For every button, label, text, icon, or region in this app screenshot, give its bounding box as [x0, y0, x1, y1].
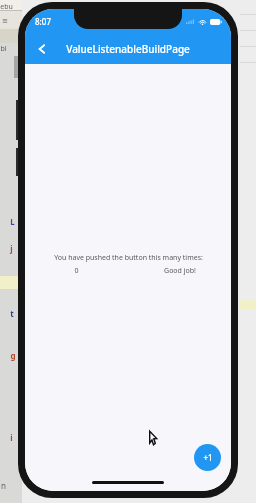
staticText: j: [10, 243, 13, 254]
staticText: +1: [203, 452, 213, 463]
staticText: t: [10, 308, 14, 319]
staticText: You have pushed the button this many tim…: [54, 253, 203, 263]
staticText: ≡: [2, 17, 8, 25]
staticText: i: [10, 432, 13, 443]
button[interactable]: Back: [29, 36, 55, 62]
staticText: n: [1, 480, 6, 491]
staticText: Good job!: [164, 266, 196, 276]
staticText: 0: [74, 266, 79, 276]
staticText: ebu: [0, 2, 13, 12]
staticText: g: [10, 350, 16, 361]
staticText: bl: [0, 44, 7, 54]
staticText: ValueListenableBuildPage: [66, 42, 190, 56]
staticText: 8:07: [35, 16, 51, 27]
staticText: L: [10, 216, 15, 227]
button[interactable]: Increment: [194, 444, 221, 471]
